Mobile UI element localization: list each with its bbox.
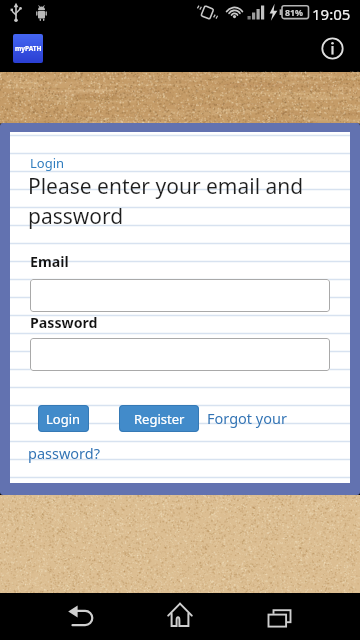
button[interactable] [30,279,330,312]
staticText: 19:05 [312,4,351,24]
button[interactable] [160,598,200,636]
button[interactable]: Login [38,405,89,432]
staticText: Please enter your email and password [28,172,340,230]
button[interactable] [62,598,102,636]
staticText: 81% [285,7,303,19]
button[interactable]: password? [28,443,101,463]
button[interactable]: Register [119,405,199,432]
button[interactable]: Login [30,154,65,172]
button[interactable]: Forgot your [207,408,287,428]
button[interactable] [262,598,302,636]
staticText: Login [46,410,81,428]
staticText: Password [30,313,98,332]
staticText: Register [134,410,185,428]
button[interactable]: myPATH [13,34,43,63]
button[interactable] [30,338,330,371]
staticText: Email [30,252,69,271]
button[interactable] [318,34,347,63]
staticText: myPATH [15,44,42,53]
